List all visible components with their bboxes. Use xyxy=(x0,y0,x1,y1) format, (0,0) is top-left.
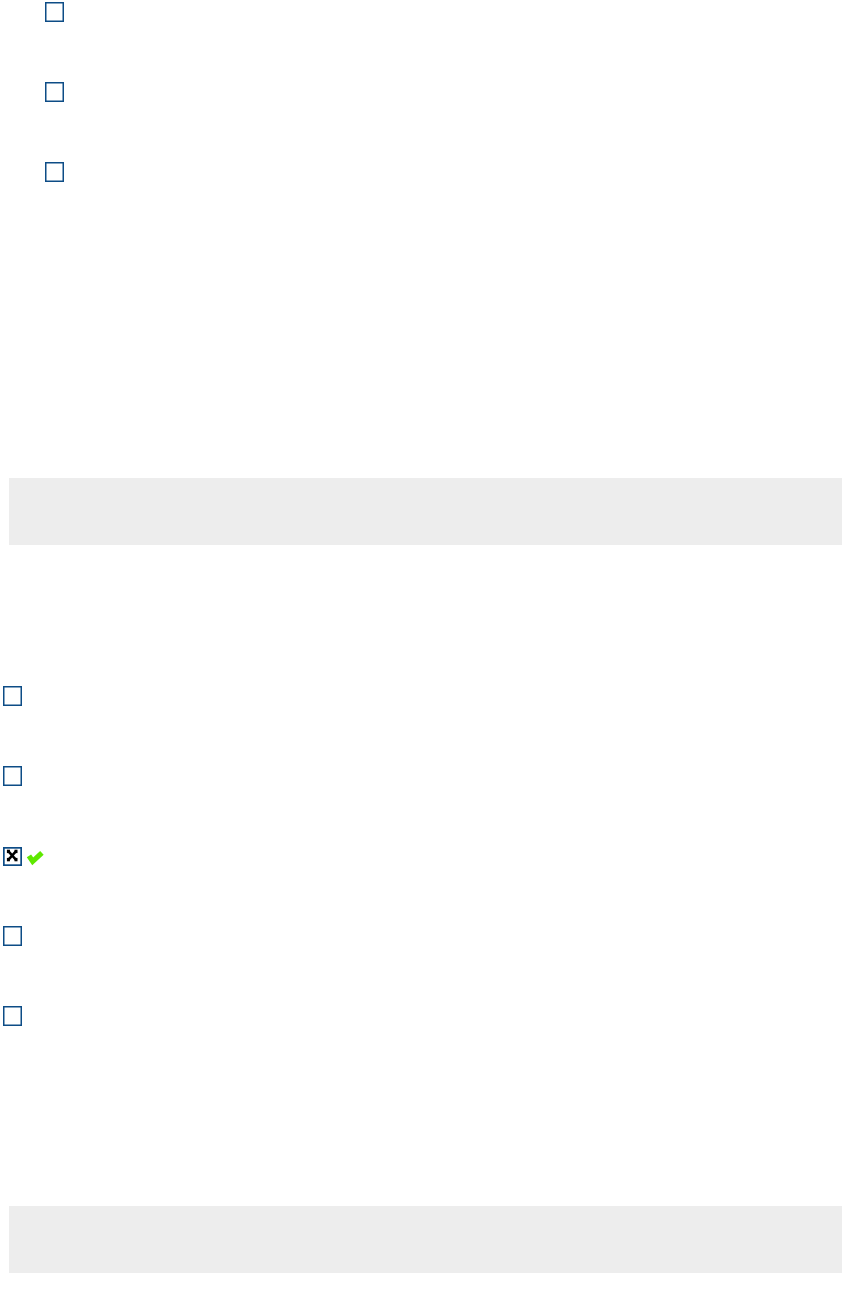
button[interactable]: Checkbox, checked xyxy=(3,847,22,866)
button[interactable]: Checkbox, unchecked xyxy=(45,162,64,182)
button[interactable]: Checkbox, unchecked xyxy=(3,686,22,706)
button[interactable]: Checkbox, unchecked xyxy=(3,926,22,946)
button[interactable]: Checkbox, unchecked xyxy=(3,766,22,786)
button[interactable]: Checkbox, unchecked xyxy=(3,1006,22,1026)
button[interactable]: Checkbox, unchecked xyxy=(45,82,64,102)
button[interactable]: Checkbox, unchecked xyxy=(45,2,64,22)
button[interactable]: Verified xyxy=(27,851,43,865)
